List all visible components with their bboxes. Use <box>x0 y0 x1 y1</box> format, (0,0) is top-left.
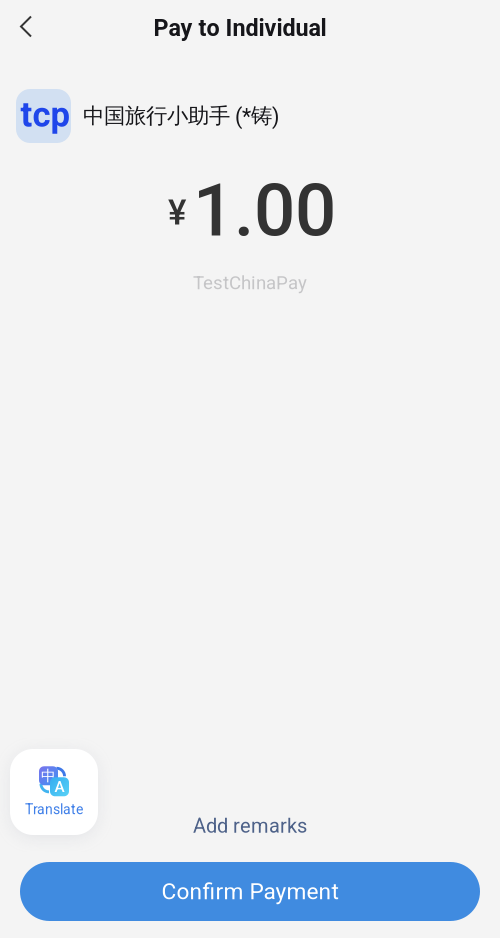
staticText: TestChinaPay <box>193 272 307 294</box>
staticText: ¥ <box>168 192 186 233</box>
staticText: Add remarks <box>193 814 307 838</box>
staticText: A <box>54 778 64 796</box>
button[interactable]: 中 <box>10 749 98 835</box>
staticText: 中国旅行小助手 (*铸) <box>83 103 279 129</box>
staticText: 1.00 <box>193 168 336 253</box>
staticText: tcp <box>20 95 70 135</box>
staticText: Confirm Payment <box>161 878 338 905</box>
staticText: Pay to Individual <box>153 14 326 42</box>
button[interactable]: Add remarks <box>0 814 500 838</box>
button[interactable]: Confirm Payment <box>20 862 480 921</box>
staticText: Translate <box>25 801 83 818</box>
button[interactable]: Back <box>4 5 48 49</box>
staticText: 中 <box>41 767 56 785</box>
